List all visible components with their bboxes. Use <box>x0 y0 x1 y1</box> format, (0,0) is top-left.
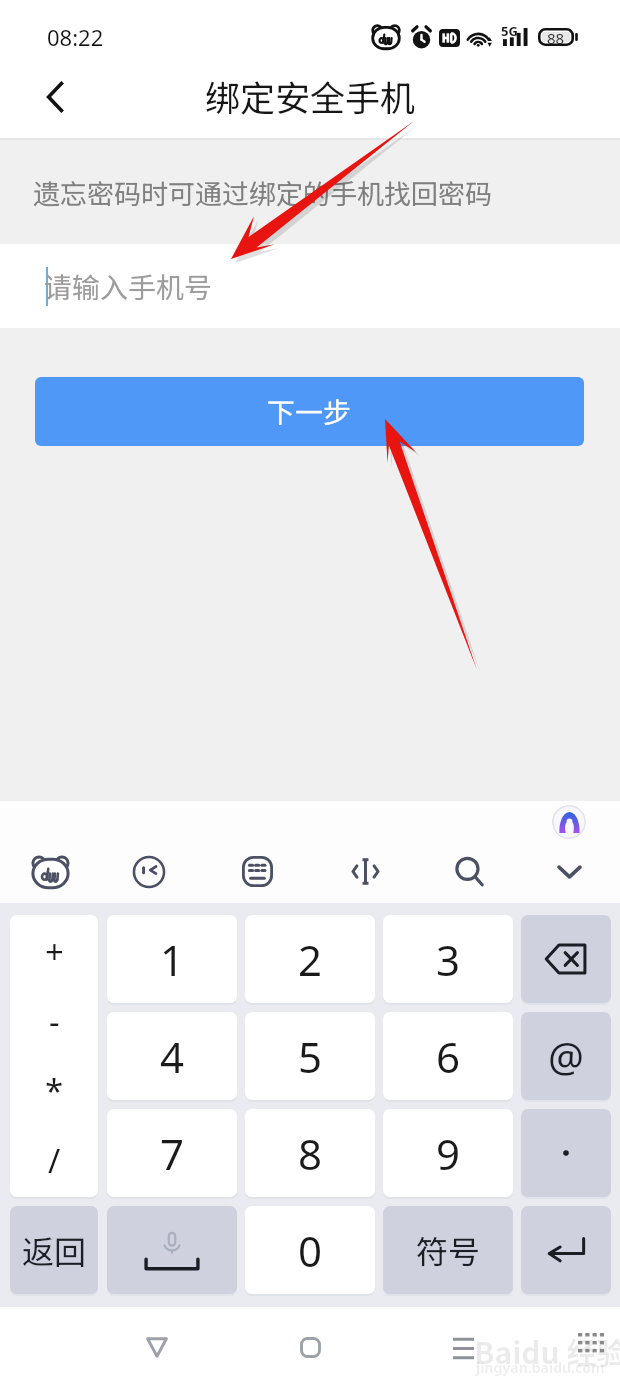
button[interactable]: Space <box>107 1206 237 1294</box>
staticText: Baidu 经验 <box>474 1329 620 1372</box>
button[interactable]: AI assistant <box>552 805 586 839</box>
staticText: 5 <box>298 1028 323 1085</box>
button[interactable]: Hide keyboard <box>541 843 597 900</box>
button[interactable]: Operators <box>10 915 98 1197</box>
button[interactable]: Backspace <box>521 915 611 1003</box>
staticText: 88 <box>547 28 565 46</box>
staticText: @ <box>548 1029 584 1083</box>
button[interactable]: 9 <box>383 1109 513 1197</box>
button[interactable]: 6 <box>383 1012 513 1100</box>
staticText: 08:22 <box>47 22 104 52</box>
button[interactable]: Recent apps <box>435 1319 491 1375</box>
staticText: 7 <box>160 1125 185 1182</box>
staticText: 返回 <box>22 1227 87 1273</box>
staticText: * <box>45 1068 64 1113</box>
staticText: 8 <box>298 1125 323 1182</box>
button[interactable]: At sign <box>521 1012 611 1100</box>
button[interactable]: Back <box>129 1319 185 1375</box>
button[interactable]: Move cursor <box>337 843 393 900</box>
button[interactable]: 下一步 <box>35 377 584 446</box>
staticText: 9 <box>436 1125 461 1182</box>
staticText: 6 <box>436 1028 461 1085</box>
button[interactable]: Return <box>10 1206 98 1294</box>
button[interactable]: Keyboard layout <box>229 843 285 900</box>
staticText: jingyan.baidu.com <box>476 1358 605 1377</box>
button[interactable]: 7 <box>107 1109 237 1197</box>
staticText: 1 <box>160 931 185 988</box>
button[interactable]: 8 <box>245 1109 375 1197</box>
button[interactable]: 4 <box>107 1012 237 1100</box>
button[interactable]: Symbols <box>383 1206 513 1294</box>
button[interactable]: Emoji <box>121 843 177 900</box>
staticText: 符号 <box>416 1227 481 1273</box>
button[interactable]: 0 <box>245 1206 375 1294</box>
staticText: 4 <box>160 1028 185 1085</box>
staticText: 绑定安全手机 <box>205 70 416 121</box>
staticText: + <box>45 929 64 974</box>
button[interactable]: Back <box>28 70 82 124</box>
staticText: 0 <box>298 1222 323 1279</box>
button[interactable]: Enter <box>521 1206 611 1294</box>
button[interactable]: 请输入手机号 <box>0 244 620 328</box>
button[interactable]: Search <box>442 843 498 900</box>
button[interactable]: 5 <box>245 1012 375 1100</box>
staticText: - <box>49 999 60 1044</box>
staticText: 请输入手机号 <box>44 266 213 307</box>
staticText: 5G <box>501 22 518 40</box>
staticText: 2 <box>298 931 323 988</box>
staticText: 下一步 <box>267 391 352 432</box>
staticText: / <box>48 1138 61 1183</box>
staticText: 遗忘密码时可通过绑定的手机找回密码 <box>33 173 492 212</box>
button[interactable]: 3 <box>383 915 513 1003</box>
button[interactable]: Baidu input <box>22 843 78 900</box>
button[interactable]: 1 <box>107 915 237 1003</box>
staticText: 3 <box>436 931 461 988</box>
button[interactable]: 2 <box>245 915 375 1003</box>
button[interactable]: Home <box>282 1319 338 1375</box>
button[interactable]: Period <box>521 1109 611 1197</box>
